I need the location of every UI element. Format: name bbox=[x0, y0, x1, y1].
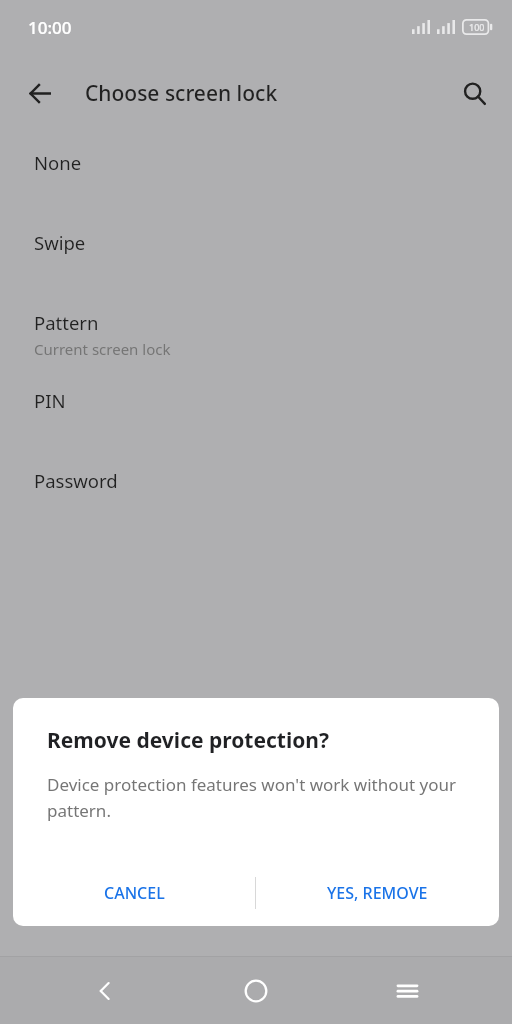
button[interactable]: Search bbox=[449, 68, 499, 118]
staticText: Password bbox=[34, 468, 118, 493]
button[interactable]: CANCEL bbox=[90, 874, 179, 912]
staticText: CANCEL bbox=[104, 882, 165, 904]
button[interactable]: YES, REMOVE bbox=[313, 874, 442, 912]
button[interactable]: Pattern bbox=[0, 310, 512, 388]
staticText: 10:00 bbox=[28, 16, 72, 39]
staticText: Swipe bbox=[34, 230, 86, 255]
button[interactable]: None bbox=[0, 150, 512, 230]
staticText: PIN bbox=[34, 388, 66, 413]
staticText: Remove device protection? bbox=[47, 726, 330, 755]
staticText: None bbox=[34, 150, 82, 175]
staticText: 100 bbox=[469, 21, 485, 33]
button[interactable]: Swipe bbox=[0, 230, 512, 310]
button[interactable]: Password bbox=[0, 468, 512, 548]
staticText: YES, REMOVE bbox=[327, 882, 428, 904]
staticText: Device protection features won't work wi… bbox=[47, 773, 467, 822]
staticText: Pattern bbox=[34, 310, 99, 335]
button[interactable]: Back bbox=[61, 957, 151, 1024]
button[interactable]: Back bbox=[14, 67, 66, 119]
button[interactable]: Recent apps bbox=[362, 957, 452, 1024]
button[interactable]: Home bbox=[211, 957, 301, 1024]
button[interactable]: PIN bbox=[0, 388, 512, 468]
staticText: Choose screen lock bbox=[85, 79, 278, 108]
staticText: Current screen lock bbox=[34, 339, 171, 359]
